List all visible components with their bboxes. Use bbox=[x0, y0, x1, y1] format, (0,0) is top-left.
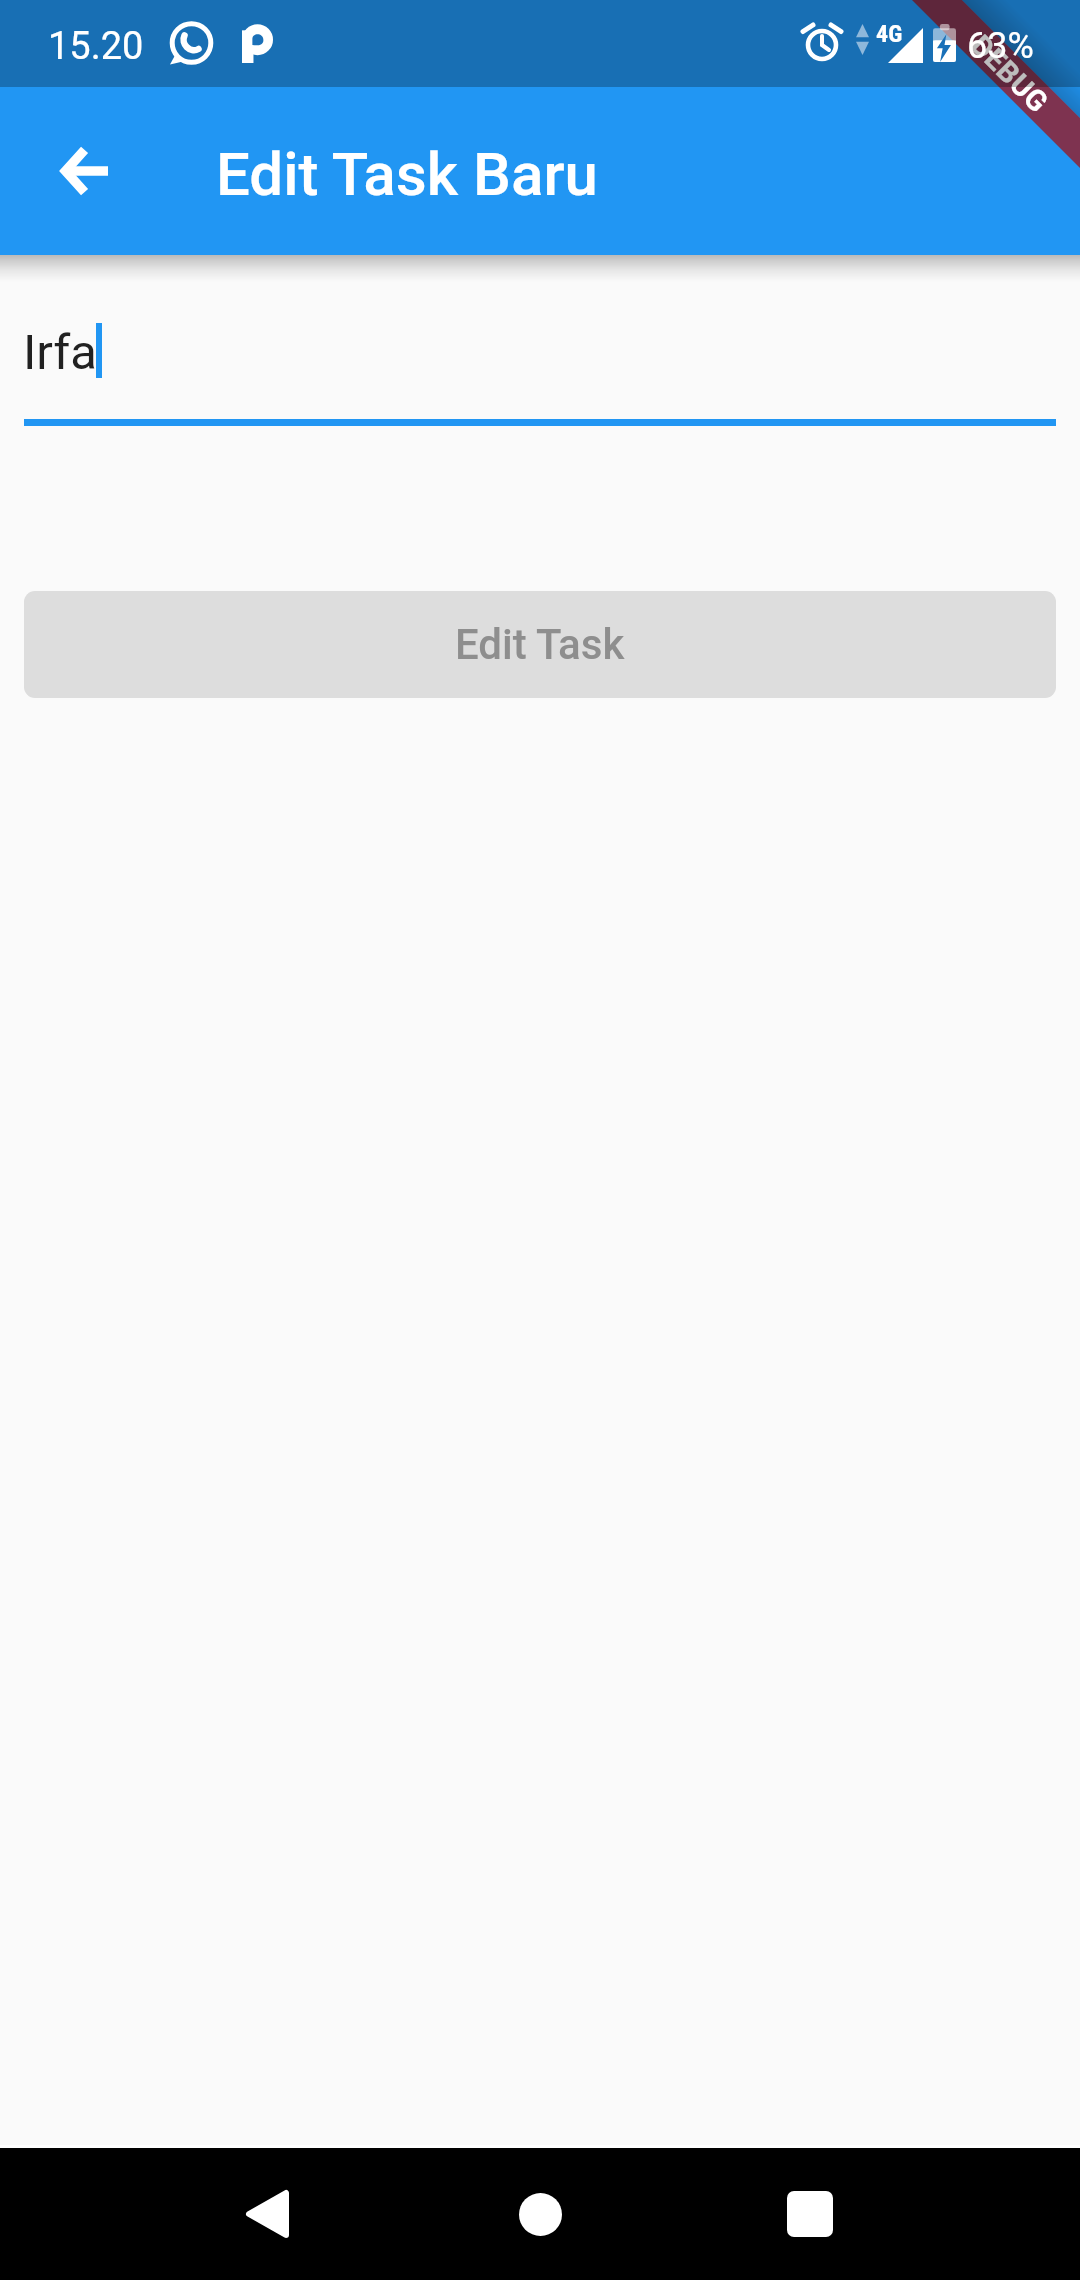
staticText: 63% bbox=[967, 25, 1034, 67]
staticText: Edit Task bbox=[455, 620, 625, 669]
button[interactable]: Recent apps bbox=[755, 2159, 865, 2269]
button[interactable]: Home bbox=[485, 2159, 595, 2269]
staticText: 4G bbox=[876, 20, 903, 48]
staticText: Edit Task Baru bbox=[216, 139, 598, 209]
staticText: 15.20 bbox=[48, 24, 144, 69]
button[interactable]: Back bbox=[212, 2159, 322, 2269]
button[interactable]: Edit Task bbox=[24, 591, 1056, 698]
button[interactable]: Back bbox=[38, 123, 134, 219]
staticText: Irfa bbox=[23, 324, 97, 381]
staticText: DEBUG bbox=[964, 28, 1056, 120]
